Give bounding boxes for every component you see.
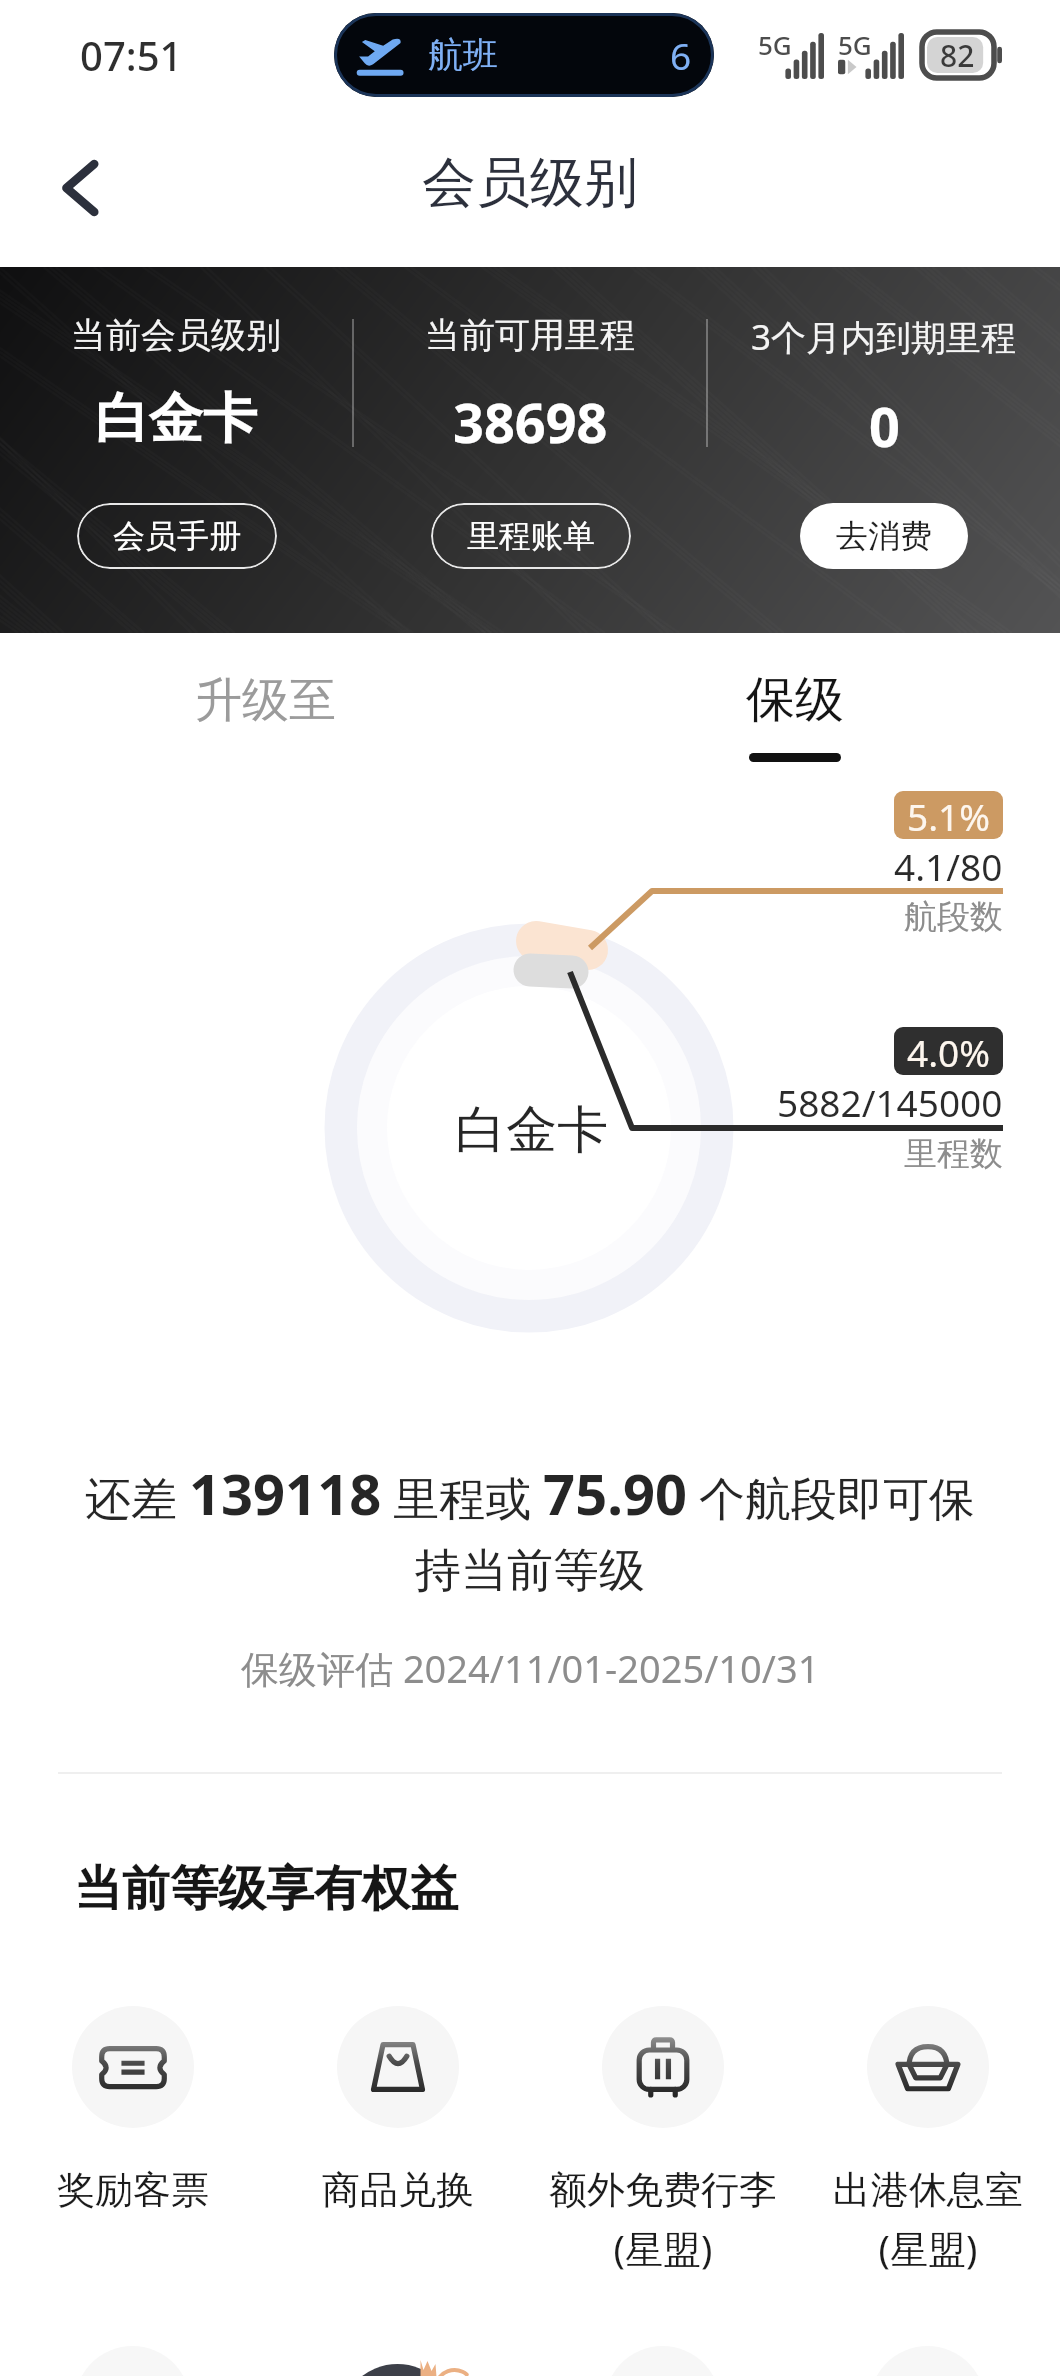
button[interactable]: Flight status <box>334 13 714 97</box>
staticText: 升级至 <box>195 671 336 730</box>
staticText: 4.1/80 <box>894 841 1003 891</box>
staticText: 会员手册 <box>113 516 241 556</box>
staticText: 里程账单 <box>467 516 595 556</box>
button[interactable]: 去消费 <box>800 503 968 569</box>
staticText: 里程数 <box>904 1133 1003 1175</box>
button[interactable]: Back <box>30 138 130 238</box>
button[interactable]: 商品兑换 <box>265 2006 530 2214</box>
button[interactable]: Member benefit <box>265 2346 530 2376</box>
staticText: 82 <box>940 35 975 76</box>
staticText: 航段数 <box>904 896 1003 938</box>
staticText: 航班 <box>428 33 498 77</box>
staticText: 5G <box>838 27 872 62</box>
staticText: 出港休息室 (星盟) <box>833 2166 1023 2274</box>
button[interactable]: 保级 <box>530 633 1060 793</box>
staticText: 去消费 <box>836 516 932 556</box>
button[interactable]: Member benefit <box>795 2346 1060 2376</box>
button[interactable]: 升级至 <box>0 633 530 793</box>
staticText: 当前可用里程 <box>425 313 635 357</box>
staticText: 商品兑换 <box>322 2166 474 2214</box>
staticText: 6 <box>670 30 692 80</box>
staticText: 5G <box>758 27 792 62</box>
staticText: 会员级别 <box>422 149 638 217</box>
staticText: 4.0% <box>907 1027 990 1075</box>
staticText: 奖励客票 <box>57 2166 209 2214</box>
button[interactable]: 里程账单 <box>431 503 631 569</box>
staticText: 白金卡 <box>95 385 257 453</box>
button[interactable]: Member benefit <box>0 2346 265 2376</box>
button[interactable]: 会员手册 <box>77 503 277 569</box>
staticText: 保级 <box>746 669 844 731</box>
staticText: 5882/145000 <box>777 1077 1003 1127</box>
staticText: 保级评估 2024/11/01-2025/10/31 <box>241 1642 820 1694</box>
button[interactable]: Member benefit <box>530 2346 795 2376</box>
button[interactable]: 奖励客票 <box>0 2006 265 2214</box>
staticText: 当前会员级别 <box>71 313 281 357</box>
staticText: 白金卡 <box>455 1098 608 1162</box>
staticText: 07:51 <box>80 28 183 82</box>
staticText: 5.1% <box>907 791 990 839</box>
button[interactable]: 出港休息室 (星盟) <box>795 2006 1060 2274</box>
staticText: 0 <box>869 389 900 453</box>
staticText: 还差 139118 里程或 75.90 个航段即可保持当前等级 <box>68 1455 992 1600</box>
staticText: 3个月内到期里程 <box>751 313 1017 361</box>
staticText: 38698 <box>453 385 608 453</box>
button[interactable]: 额外免费行李 (星盟) <box>530 2006 795 2274</box>
staticText: 额外免费行李 (星盟) <box>549 2166 777 2274</box>
staticText: 当前等级享有权益 <box>74 1859 458 1919</box>
